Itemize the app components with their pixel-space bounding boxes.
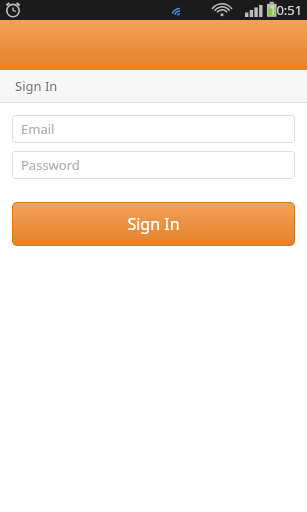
button[interactable]: Sign In <box>12 202 295 246</box>
staticText: 10:51 <box>269 1 303 19</box>
staticText: Sign In <box>127 213 180 235</box>
button[interactable]: Email <box>12 115 295 143</box>
staticText: Email <box>21 120 55 138</box>
staticText: Password <box>21 156 80 174</box>
staticText: Sign In <box>15 77 58 95</box>
button[interactable]: Password <box>12 151 295 179</box>
